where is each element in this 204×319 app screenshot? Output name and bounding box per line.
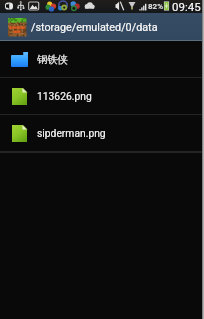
button[interactable]: 113626.png xyxy=(0,78,204,114)
button[interactable]: /storage/emulated/0/data xyxy=(0,13,204,41)
button[interactable]: sipderman.png xyxy=(0,115,204,151)
staticText: 82% xyxy=(148,2,164,11)
staticText: /storage/emulated/0/data xyxy=(31,21,158,34)
staticText: 钢铁侠 xyxy=(37,53,68,66)
staticText: sipderman.png xyxy=(37,127,106,139)
button[interactable]: 钢铁侠 xyxy=(0,41,204,77)
staticText: 113626.png xyxy=(37,90,92,102)
staticText: 09:45 xyxy=(172,0,201,13)
